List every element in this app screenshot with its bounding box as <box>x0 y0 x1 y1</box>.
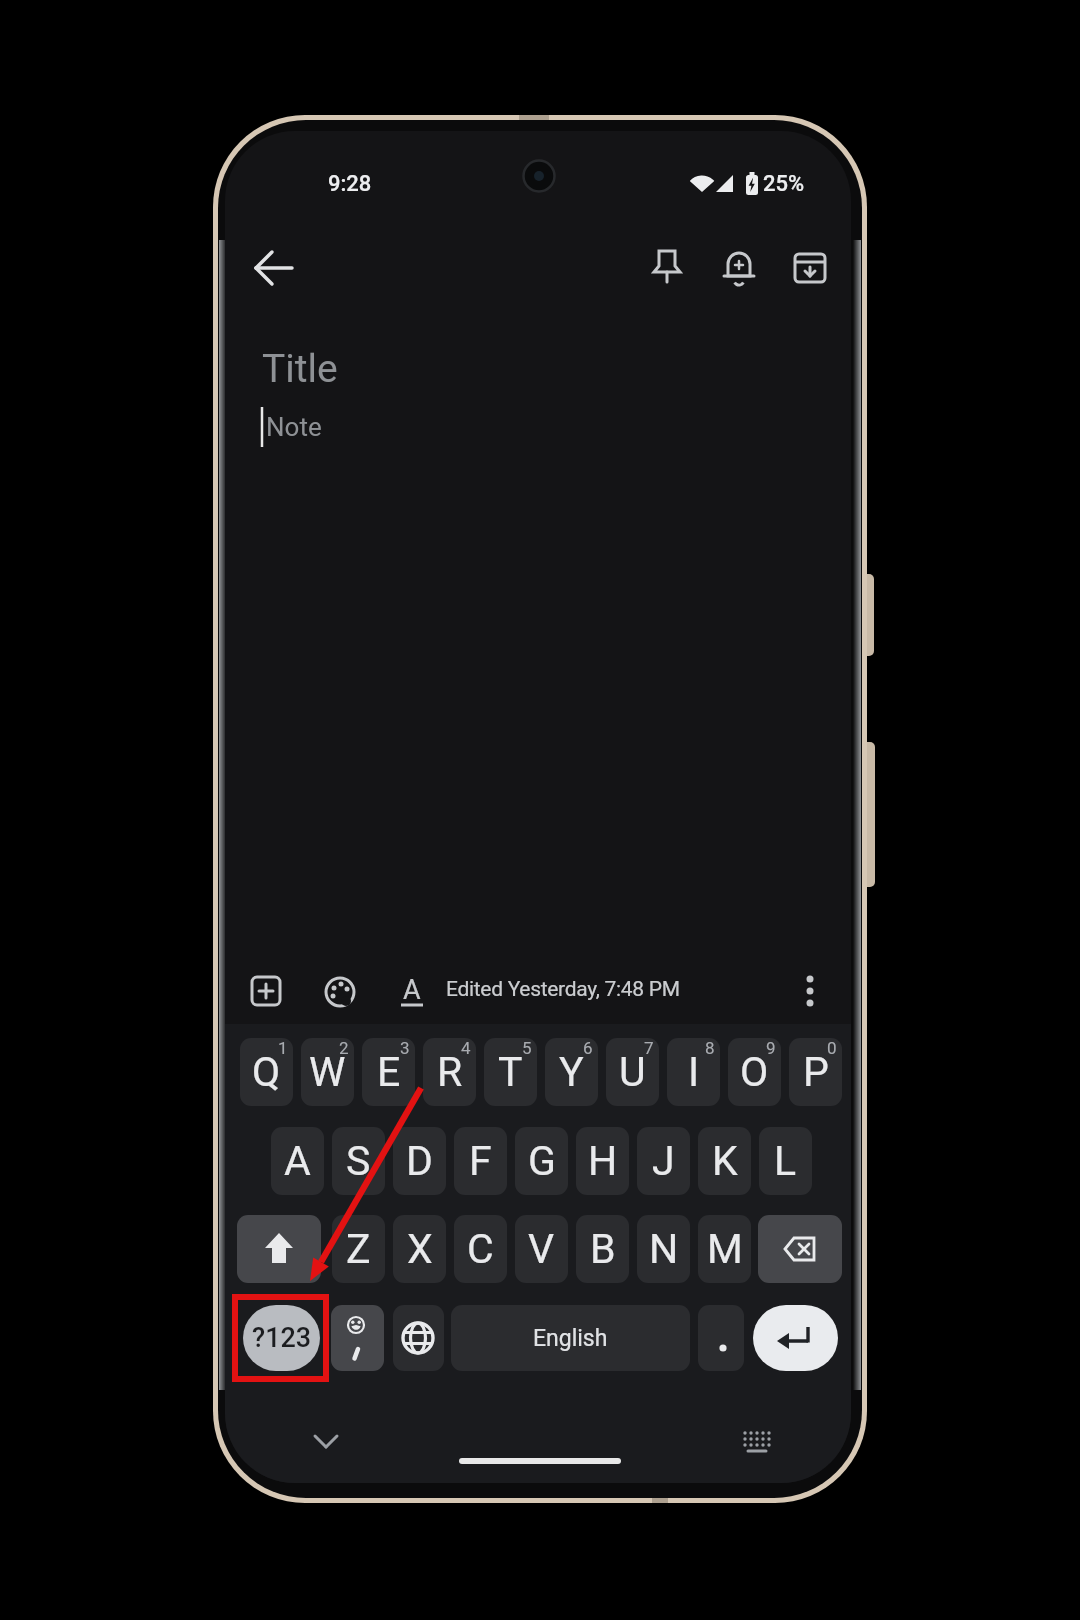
button[interactable]: R <box>423 1038 476 1106</box>
staticText: L <box>774 1137 797 1185</box>
button[interactable]: English <box>451 1305 690 1371</box>
button[interactable]: I <box>667 1038 720 1106</box>
button[interactable]: L <box>759 1127 812 1195</box>
button[interactable]: V <box>515 1215 568 1283</box>
staticText: C <box>467 1225 494 1273</box>
staticText: V <box>528 1225 555 1273</box>
staticText: 7 <box>644 1038 654 1058</box>
staticText: A <box>284 1137 311 1185</box>
button[interactable]: M <box>698 1215 751 1283</box>
staticText: Note <box>266 412 322 442</box>
staticText: O <box>740 1048 769 1096</box>
button[interactable]: Y <box>545 1038 598 1106</box>
staticText: 6 <box>583 1038 593 1058</box>
button[interactable] <box>698 1305 744 1371</box>
button[interactable]: T <box>484 1038 537 1106</box>
button[interactable]: S <box>332 1127 385 1195</box>
button[interactable] <box>715 244 763 292</box>
staticText: W <box>309 1048 346 1096</box>
staticText: U <box>619 1048 646 1096</box>
button[interactable]: F <box>454 1127 507 1195</box>
staticText: A <box>403 974 421 1006</box>
button[interactable]: P <box>789 1038 842 1106</box>
staticText: 8 <box>705 1038 715 1058</box>
staticText: I <box>688 1048 700 1096</box>
staticText: Edited Yesterday, 7:48 PM <box>446 977 680 1002</box>
button[interactable]: E <box>362 1038 415 1106</box>
button[interactable] <box>237 1215 321 1283</box>
staticText: English <box>533 1325 608 1352</box>
staticText: J <box>652 1137 675 1185</box>
staticText: 9:28 <box>328 171 372 197</box>
button[interactable]: C <box>454 1215 507 1283</box>
button[interactable]: W <box>301 1038 354 1106</box>
staticText: 5 <box>522 1038 532 1058</box>
staticText: S <box>346 1137 371 1185</box>
staticText: 9 <box>766 1038 776 1058</box>
staticText: 0 <box>827 1038 837 1058</box>
staticText: K <box>712 1137 738 1185</box>
button[interactable]: K <box>698 1127 751 1195</box>
button[interactable]: O <box>728 1038 781 1106</box>
staticText: X <box>407 1225 433 1273</box>
button[interactable]: G <box>515 1127 568 1195</box>
button[interactable]: J <box>637 1127 690 1195</box>
staticText: Y <box>559 1048 584 1096</box>
staticText: 25% <box>763 171 805 197</box>
button[interactable] <box>331 1305 384 1371</box>
staticText: B <box>590 1225 616 1273</box>
button[interactable] <box>733 1419 781 1467</box>
button[interactable]: Z <box>332 1215 385 1283</box>
staticText: Z <box>346 1225 371 1273</box>
button[interactable] <box>250 244 298 292</box>
button[interactable] <box>316 967 364 1015</box>
staticText: T <box>498 1048 523 1096</box>
button[interactable]: U <box>606 1038 659 1106</box>
button[interactable]: A <box>271 1127 324 1195</box>
button[interactable] <box>786 244 834 292</box>
staticText: E <box>377 1048 401 1096</box>
button[interactable] <box>786 967 834 1015</box>
button[interactable]: N <box>637 1215 690 1283</box>
staticText: ?123 <box>252 1322 312 1354</box>
staticText: R <box>437 1048 463 1096</box>
button[interactable]: X <box>393 1215 446 1283</box>
button[interactable] <box>387 967 435 1015</box>
button[interactable] <box>302 1419 350 1467</box>
staticText: 2 <box>339 1038 349 1058</box>
button[interactable]: B <box>576 1215 629 1283</box>
staticText: F <box>469 1137 492 1185</box>
staticText: 4 <box>461 1038 471 1058</box>
staticText: 1 <box>278 1038 288 1058</box>
staticText: Title <box>262 346 338 392</box>
button[interactable] <box>753 1305 838 1371</box>
button[interactable]: ?123 <box>243 1305 320 1371</box>
staticText: 3 <box>400 1038 410 1058</box>
button[interactable] <box>758 1215 842 1283</box>
staticText: P <box>803 1048 829 1096</box>
staticText: Q <box>252 1048 281 1096</box>
button[interactable] <box>393 1305 444 1371</box>
button[interactable]: Q <box>240 1038 293 1106</box>
staticText: N <box>649 1225 679 1273</box>
staticText: D <box>406 1137 433 1185</box>
staticText: G <box>528 1137 556 1185</box>
button[interactable]: H <box>576 1127 629 1195</box>
staticText: H <box>588 1137 618 1185</box>
button[interactable] <box>242 967 290 1015</box>
button[interactable] <box>643 244 691 292</box>
staticText: M <box>707 1225 743 1273</box>
button[interactable]: D <box>393 1127 446 1195</box>
